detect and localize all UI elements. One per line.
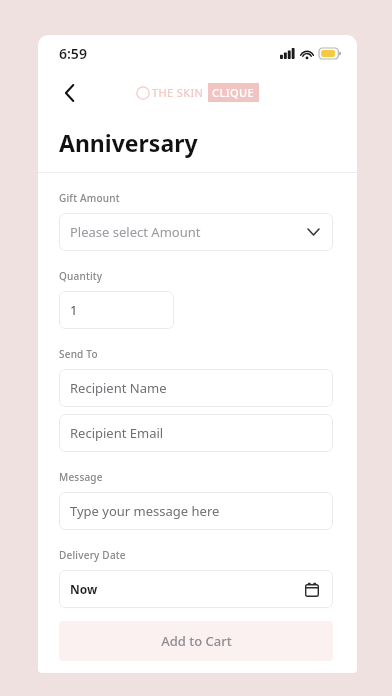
staticText: Please select Amount <box>70 223 201 241</box>
button[interactable]: Now <box>59 570 333 608</box>
staticText: 1 <box>70 301 78 319</box>
other: Pick delivery date <box>302 579 322 599</box>
staticText: Gift Amount <box>59 191 120 205</box>
button[interactable]: 1 <box>59 291 174 329</box>
other: Expand amount options <box>304 223 322 241</box>
staticText: Type your message here <box>70 502 220 520</box>
staticText: Now <box>70 581 98 597</box>
staticText: 6:59 <box>59 44 87 63</box>
staticText: CLIQUE <box>212 85 255 100</box>
button[interactable]: Please select Amount <box>59 213 333 251</box>
button[interactable]: Recipient Email <box>59 414 333 452</box>
staticText: THE SKIN <box>152 85 204 100</box>
button[interactable]: Add to Cart <box>59 621 333 661</box>
button[interactable]: Back <box>52 76 86 110</box>
staticText: Message <box>59 470 103 484</box>
staticText: Recipient Name <box>70 379 167 397</box>
staticText: Delivery Date <box>59 548 126 562</box>
staticText: Recipient Email <box>70 424 164 442</box>
staticText: Quantity <box>59 269 103 283</box>
staticText: Anniversary <box>59 127 198 158</box>
staticText: Send To <box>59 347 98 361</box>
button[interactable]: Recipient Name <box>59 369 333 407</box>
staticText: Add to Cart <box>161 632 232 650</box>
button[interactable]: Type your message here <box>59 492 333 530</box>
